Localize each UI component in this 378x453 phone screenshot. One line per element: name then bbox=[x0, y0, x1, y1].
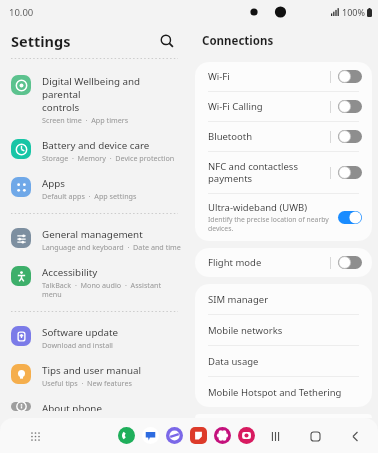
staticText: TalkBack · Mono audio · Assistant menu bbox=[42, 280, 181, 299]
staticText: 100% bbox=[342, 6, 365, 18]
button[interactable]: Battery and device care bbox=[0, 132, 189, 170]
staticText: Screen time · App timers bbox=[42, 115, 129, 125]
button[interactable]: Toggle off bbox=[338, 130, 362, 143]
button[interactable]: Recents bbox=[266, 427, 284, 445]
staticText: Default apps · App settings bbox=[42, 191, 137, 201]
button[interactable]: Mobile networks bbox=[195, 315, 372, 345]
staticText: Tips and user manual bbox=[42, 364, 142, 377]
button[interactable]: SIM manager bbox=[195, 284, 372, 314]
button[interactable]: Phone bbox=[118, 427, 135, 444]
staticText: Accessibility bbox=[42, 266, 98, 279]
button[interactable]: Apps bbox=[26, 427, 44, 445]
button[interactable]: Home bbox=[306, 427, 324, 445]
button[interactable]: Gallery bbox=[238, 427, 255, 444]
staticText: About phone bbox=[42, 402, 102, 411]
staticText: Digital Wellbeing and parental controls bbox=[42, 75, 181, 114]
staticText: Battery and device care bbox=[42, 139, 150, 152]
staticText: Download and install bbox=[42, 340, 113, 350]
button[interactable]: Toggle on bbox=[338, 211, 362, 224]
staticText: Ultra-wideband (UWB) bbox=[208, 201, 308, 214]
button[interactable]: Toggle off bbox=[338, 70, 362, 83]
button[interactable]: Search settings bbox=[156, 30, 178, 52]
button[interactable]: Bluetooth bbox=[195, 122, 372, 151]
button[interactable]: Data usage bbox=[195, 346, 372, 376]
button[interactable]: Software update bbox=[0, 319, 189, 357]
staticText: Apps bbox=[42, 177, 66, 190]
button[interactable]: Back bbox=[346, 427, 364, 445]
button[interactable]: Internet bbox=[166, 427, 183, 444]
button[interactable]: Wi-Fi Calling bbox=[195, 92, 372, 121]
button[interactable]: Toggle off bbox=[338, 166, 362, 179]
button[interactable]: Flower app bbox=[214, 427, 231, 444]
staticText: Software update bbox=[42, 326, 118, 339]
button[interactable]: Toggle off bbox=[338, 256, 362, 269]
button[interactable]: About phone bbox=[0, 395, 189, 418]
button[interactable]: Ultra-wideband (UWB) bbox=[195, 194, 372, 241]
button[interactable]: General management bbox=[0, 221, 189, 259]
staticText: 10.00 bbox=[9, 6, 34, 19]
button[interactable]: Digital Wellbeing and parental controls bbox=[0, 68, 189, 132]
staticText: Settings bbox=[11, 31, 156, 51]
button[interactable]: Flight mode bbox=[195, 248, 372, 277]
button[interactable]: Apps bbox=[0, 170, 189, 208]
staticText: Mobile Hotspot and Tethering bbox=[208, 386, 342, 399]
staticText: SIM manager bbox=[208, 293, 269, 306]
staticText: Mobile networks bbox=[208, 324, 283, 337]
button[interactable]: Tips and user manual bbox=[0, 357, 189, 395]
staticText: Data usage bbox=[208, 355, 259, 368]
staticText: Identify the precise location of nearby … bbox=[208, 215, 329, 233]
staticText: General management bbox=[42, 228, 143, 241]
button[interactable]: Messages bbox=[142, 427, 159, 444]
staticText: Language and keyboard · Date and time bbox=[42, 242, 181, 252]
staticText: NFC and contactless payments bbox=[208, 160, 298, 185]
staticText: Flight mode bbox=[208, 256, 262, 269]
button[interactable]: NFC and contactless payments bbox=[195, 152, 372, 193]
button[interactable]: Toggle off bbox=[338, 100, 362, 113]
button[interactable]: Accessibility bbox=[0, 259, 189, 306]
staticText: Connections bbox=[202, 33, 274, 49]
staticText: Useful tips · New features bbox=[42, 378, 132, 388]
staticText: Wi-Fi Calling bbox=[208, 100, 263, 113]
staticText: Wi-Fi bbox=[208, 70, 230, 83]
button[interactable]: Notes bbox=[190, 427, 207, 444]
staticText: Bluetooth bbox=[208, 130, 253, 143]
staticText: Storage · Memory · Device protection bbox=[42, 153, 175, 163]
button[interactable]: Wi-Fi bbox=[195, 62, 372, 91]
button[interactable]: Mobile Hotspot and Tethering bbox=[195, 377, 372, 407]
